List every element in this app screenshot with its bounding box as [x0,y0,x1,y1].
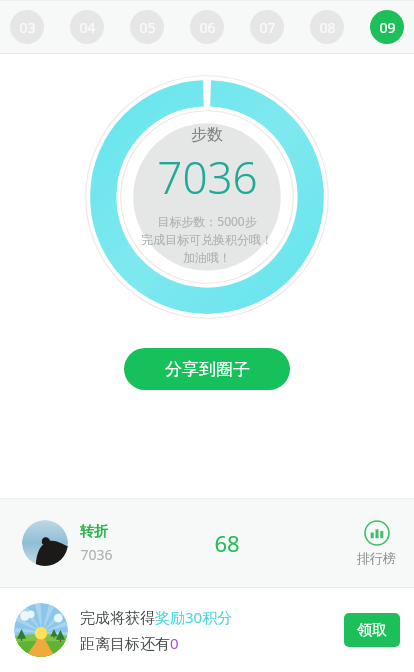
staticText: 加油哦！ [183,250,231,265]
button[interactable]: 08 [310,10,344,44]
staticText: 07 [259,18,276,37]
staticText: 步数 [191,125,223,145]
staticText: 06 [199,18,216,37]
button[interactable]: 07 [250,10,284,44]
button[interactable]: 领取 [344,613,400,647]
button[interactable]: 09 [370,10,404,44]
staticText: 05 [139,18,156,37]
staticText: 完成将获得奖励30积分 [80,607,233,627]
staticText: 03 [19,18,36,37]
button[interactable]: 03 [10,10,44,44]
button[interactable]: 04 [70,10,104,44]
button[interactable]: 分享到圈子 [124,348,290,390]
staticText: 分享到圈子 [165,359,250,380]
staticText: 09 [379,18,396,37]
staticText: 排行榜 [357,550,396,566]
button[interactable]: 05 [130,10,164,44]
button[interactable]: 排行榜 [357,520,396,566]
staticText: 7036 [80,545,113,564]
staticText: 领取 [357,621,387,640]
button[interactable]: 06 [190,10,224,44]
staticText: 完成目标可兑换积分哦！ [141,232,273,247]
staticText: 68 [214,528,240,558]
staticText: 目标步数：5000步 [157,213,257,229]
staticText: 7036 [157,147,258,207]
staticText: 转折 [80,523,108,541]
staticText: 08 [319,18,336,37]
button[interactable]: 转折 [0,499,414,587]
staticText: 距离目标还有0 [80,633,179,653]
staticText: 04 [79,18,96,37]
